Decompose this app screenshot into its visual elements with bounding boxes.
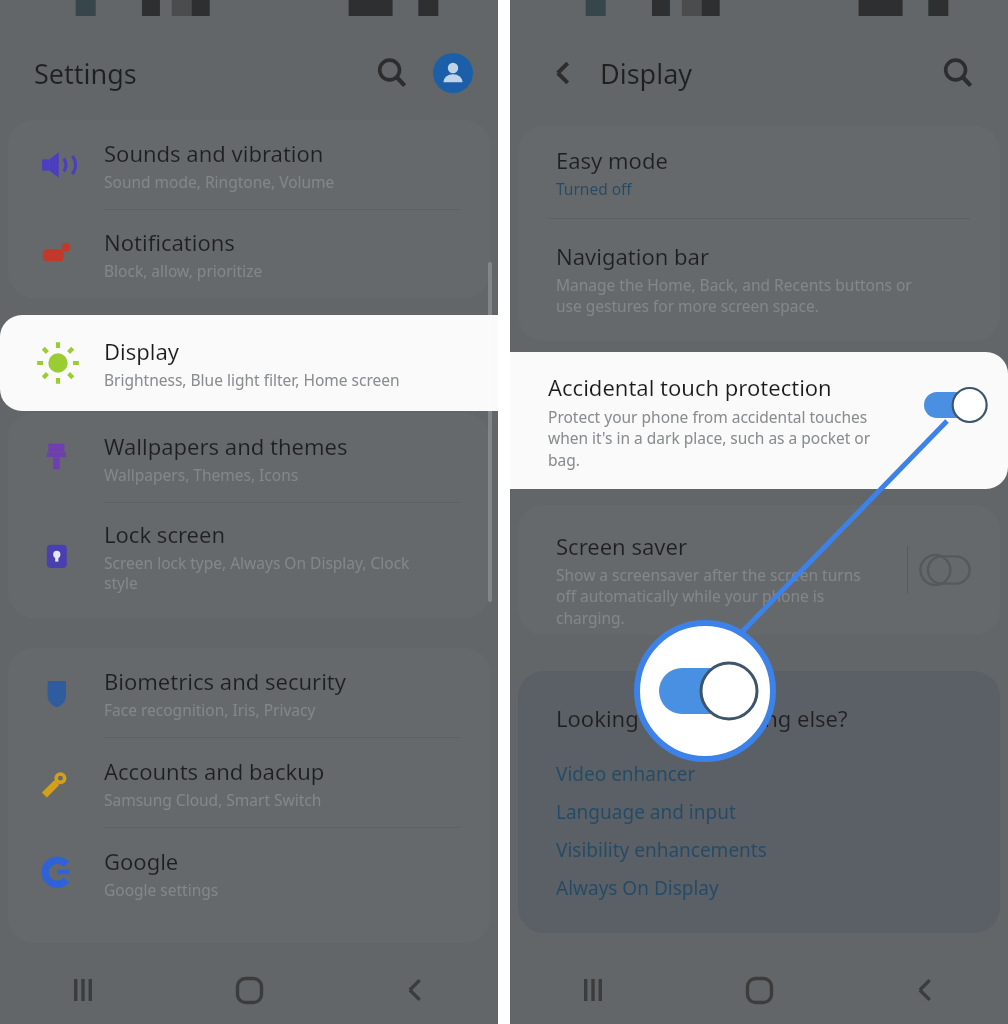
- staticText: Block, allow, prioritize: [104, 260, 263, 281]
- staticText: Visibility enhancements: [556, 837, 767, 863]
- staticText: Settings: [34, 55, 137, 92]
- staticText: Show a screensaver after the screen turn…: [556, 564, 861, 629]
- staticText: Manage the Home, Back, and Recents butto…: [556, 274, 912, 317]
- button[interactable]: Visibility enhancements: [556, 831, 767, 869]
- button[interactable]: Video enhancer: [556, 755, 696, 793]
- button[interactable]: Back: [540, 50, 586, 96]
- staticText: Face recognition, Iris, Privacy: [104, 699, 316, 720]
- staticText: Looking for something else?: [556, 703, 848, 733]
- button[interactable]: Navigation bar: [518, 219, 1000, 339]
- button[interactable]: Easy mode: [518, 126, 1000, 218]
- staticText: Google settings: [104, 879, 219, 900]
- staticText: Easy mode: [556, 145, 668, 175]
- button[interactable]: Lock screen: [8, 503, 490, 609]
- staticText: Brightness, Blue light filter, Home scre…: [104, 369, 400, 390]
- button[interactable]: Language and input: [556, 793, 736, 831]
- button[interactable]: Home: [676, 956, 842, 1024]
- staticText: Display: [600, 55, 693, 92]
- staticText: Accidental touch protection: [548, 372, 832, 402]
- button[interactable]: Search: [368, 49, 416, 97]
- staticText: Screen lock type, Always On Display, Clo…: [104, 552, 410, 594]
- button[interactable]: Notifications: [8, 210, 490, 298]
- staticText: Biometrics and security: [104, 666, 347, 696]
- button[interactable]: Biometrics and security: [8, 648, 490, 737]
- button[interactable]: Back: [332, 956, 498, 1024]
- staticText: Video enhancer: [556, 761, 696, 787]
- button[interactable]: Home: [166, 956, 332, 1024]
- staticText: Wallpapers, Themes, Icons: [104, 464, 299, 485]
- button[interactable]: Screen saver toggle: [918, 553, 980, 587]
- button[interactable]: Always On Display: [556, 869, 719, 907]
- button[interactable]: Recents: [510, 956, 676, 1024]
- staticText: Display: [104, 336, 180, 366]
- button[interactable]: Sounds and vibration: [8, 120, 490, 209]
- staticText: Notifications: [104, 227, 235, 257]
- button[interactable]: Wallpapers and themes: [8, 413, 490, 502]
- button[interactable]: Back: [842, 956, 1008, 1024]
- button[interactable]: Display: [0, 315, 498, 411]
- button[interactable]: Google: [8, 828, 490, 917]
- button[interactable]: Accidental touch protection toggle: [924, 388, 986, 422]
- button[interactable]: Recents: [0, 956, 166, 1024]
- staticText: Samsung Cloud, Smart Switch: [104, 789, 322, 810]
- button[interactable]: Account: [430, 50, 476, 96]
- button[interactable]: Search: [934, 49, 982, 97]
- button[interactable]: Screen saver: [518, 505, 1000, 635]
- staticText: Screen saver: [556, 531, 687, 561]
- staticText: Sound mode, Ringtone, Volume: [104, 171, 335, 192]
- staticText: Lock screen: [104, 519, 226, 549]
- staticText: Navigation bar: [556, 241, 709, 271]
- button[interactable]: Accidental touch protection: [510, 352, 1008, 489]
- staticText: Google: [104, 846, 179, 876]
- staticText: Accounts and backup: [104, 756, 325, 786]
- button[interactable]: Accounts and backup: [8, 738, 490, 827]
- staticText: Wallpapers and themes: [104, 431, 348, 461]
- staticText: Protect your phone from accidental touch…: [548, 406, 871, 471]
- staticText: Language and input: [556, 799, 736, 825]
- staticText: Turned off: [556, 178, 632, 199]
- staticText: Sounds and vibration: [104, 138, 324, 168]
- staticText: Always On Display: [556, 875, 719, 901]
